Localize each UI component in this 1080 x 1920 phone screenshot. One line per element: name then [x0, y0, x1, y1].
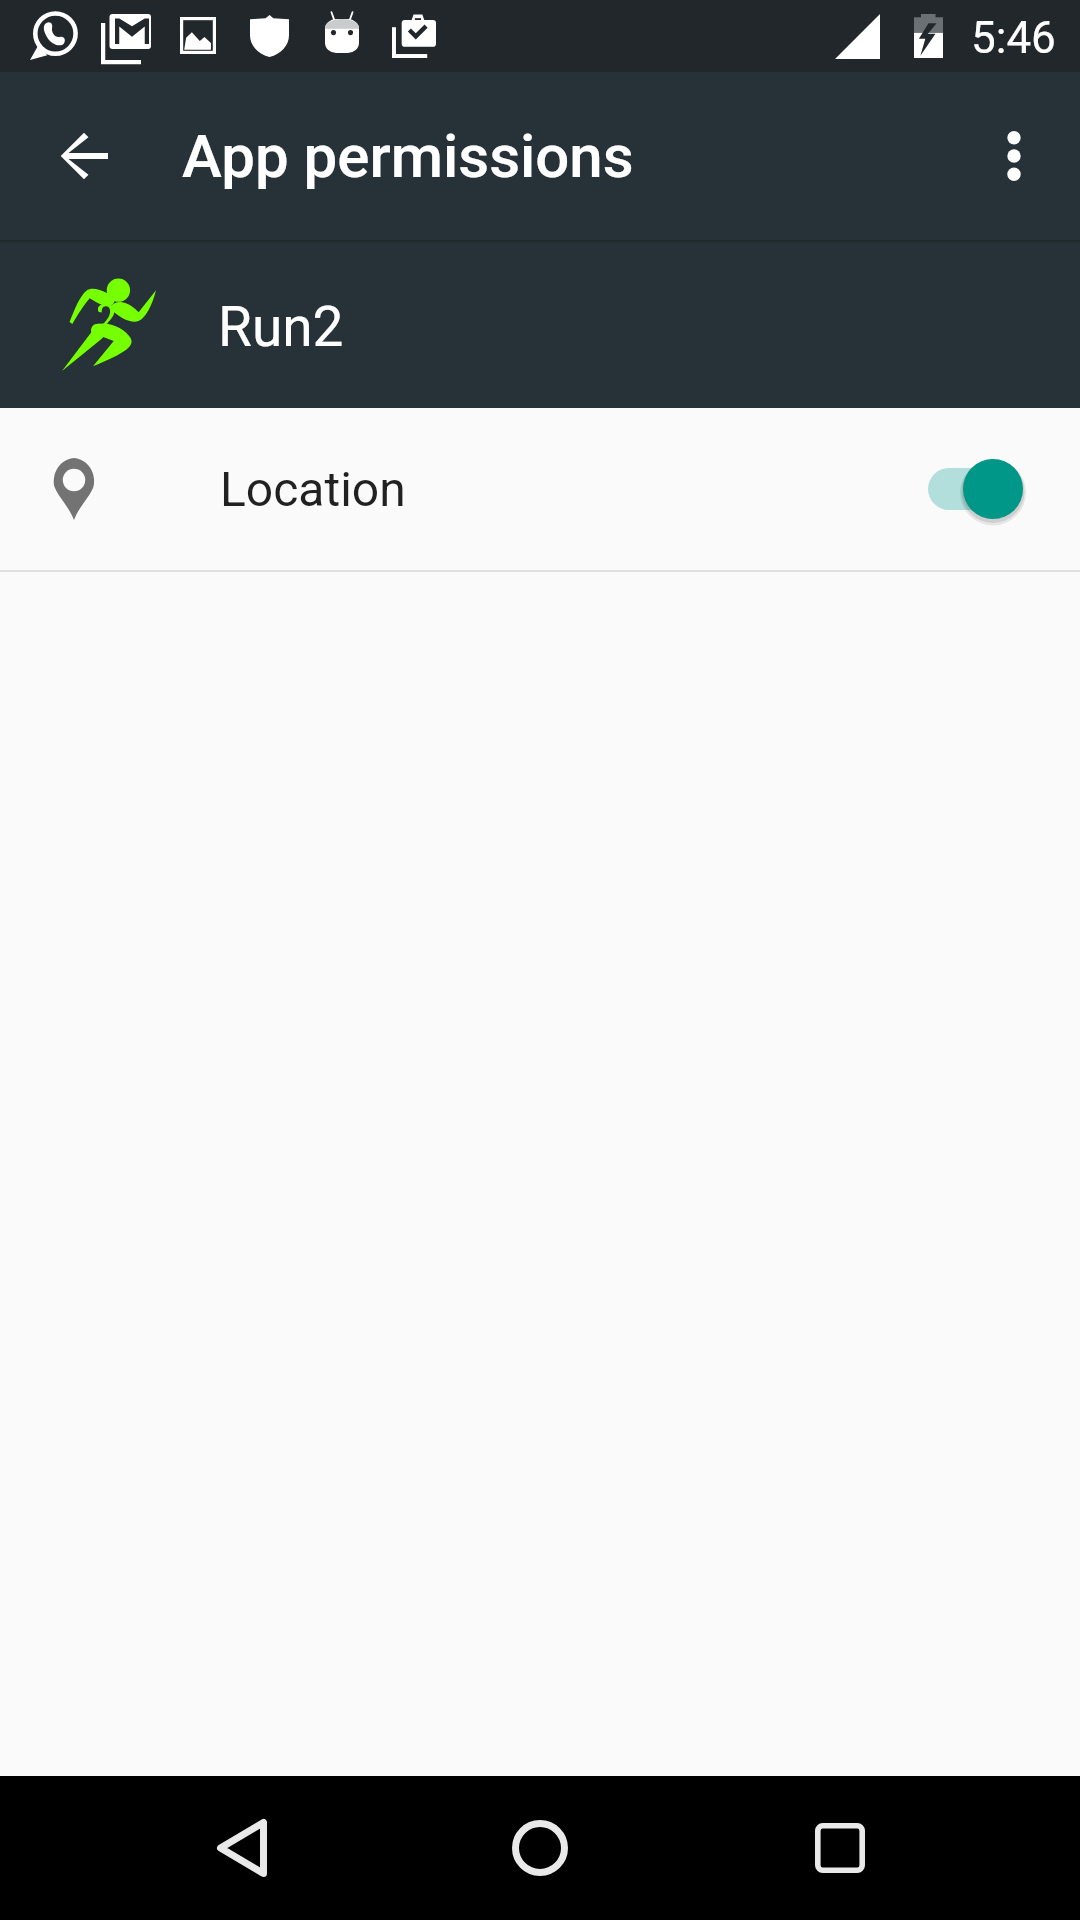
staticText: 2 — [95, 290, 118, 346]
button[interactable]: Back — [170, 1776, 314, 1920]
staticText: Run2 — [218, 295, 344, 359]
staticText: 5:46 — [971, 12, 1056, 64]
staticText: Location — [220, 461, 406, 517]
staticText: App permissions — [182, 121, 634, 191]
button[interactable]: Location permission toggle — [926, 453, 1028, 525]
button[interactable]: Location — [0, 408, 1080, 570]
button[interactable]: Back — [12, 84, 156, 228]
button[interactable]: Home — [468, 1776, 612, 1920]
button[interactable]: Recents — [768, 1776, 912, 1920]
button[interactable]: 2 — [0, 240, 1080, 408]
button[interactable]: More options — [942, 84, 1080, 228]
